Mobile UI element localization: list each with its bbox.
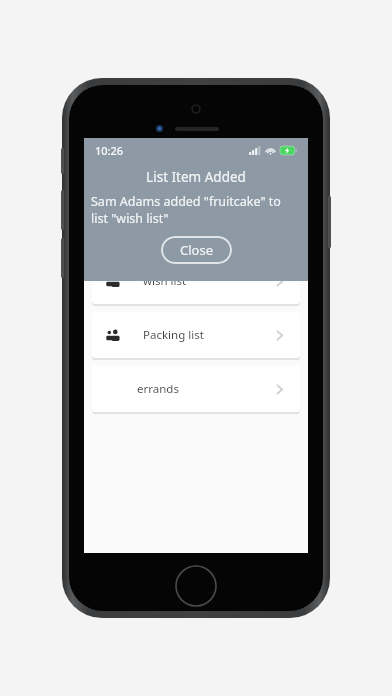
staticText: Packing list <box>143 327 204 343</box>
button[interactable]: errands <box>92 366 300 412</box>
button[interactable]: Favorites <box>230 167 254 191</box>
staticText: errands <box>137 381 179 397</box>
staticText: Sam Adams added "fruitcake" to list "wis… <box>91 193 301 226</box>
staticText: List Item Added <box>146 168 246 186</box>
staticText: wish list <box>143 273 187 289</box>
button[interactable]: Groceries <box>92 204 300 250</box>
button[interactable]: Close <box>161 236 232 264</box>
staticText: Groceries <box>143 219 195 235</box>
button[interactable]: wish list <box>92 258 300 304</box>
button[interactable]: Packing list <box>92 312 300 358</box>
staticText: 10:26 <box>95 143 124 158</box>
staticText: All Lists <box>116 170 162 188</box>
staticText: Close <box>180 241 213 259</box>
